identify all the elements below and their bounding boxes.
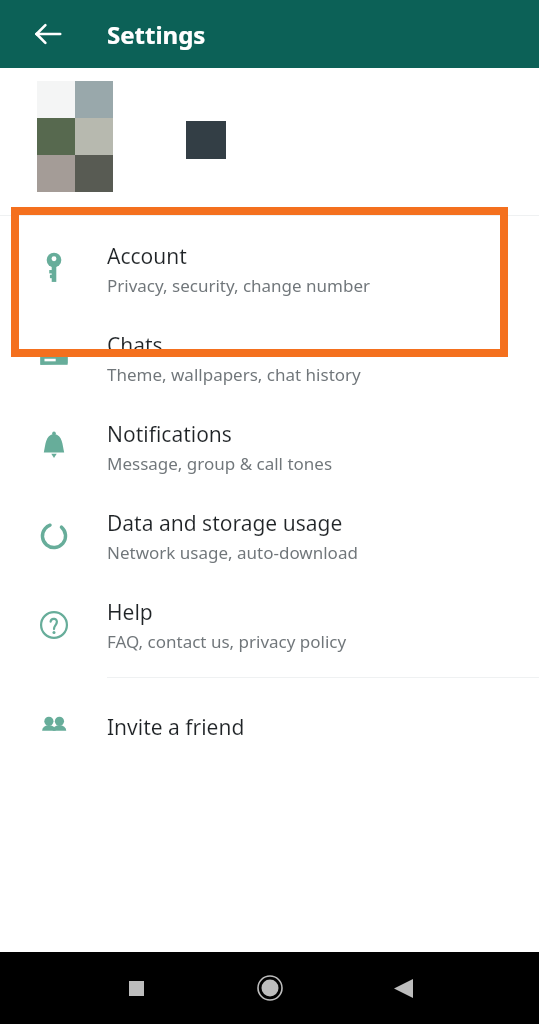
button[interactable]: Data and storage usage (0, 500, 539, 572)
button[interactable]: Chats (0, 322, 539, 394)
button[interactable]: Notifications (0, 411, 539, 483)
staticText: Privacy, security, change number (107, 274, 371, 297)
staticText: Data and storage usage (107, 509, 343, 538)
staticText: Theme, wallpapers, chat history (107, 363, 361, 386)
button[interactable]: Back (20, 6, 76, 62)
staticText: Chats (107, 331, 163, 360)
button[interactable]: Help (0, 589, 539, 661)
button[interactable]: Home (246, 964, 294, 1012)
staticText: Settings (107, 18, 206, 51)
staticText: Message, group & call tones (107, 452, 333, 475)
staticText: Network usage, auto-download (107, 541, 358, 564)
staticText: FAQ, contact us, privacy policy (107, 630, 347, 653)
staticText: Account (107, 242, 187, 271)
button[interactable]: Recents (112, 964, 160, 1012)
button[interactable]: Account (0, 233, 539, 305)
button[interactable]: Back (379, 964, 427, 1012)
button[interactable] (0, 68, 539, 215)
staticText: Invite a friend (107, 713, 245, 742)
staticText: Help (107, 598, 153, 627)
staticText: Notifications (107, 420, 232, 449)
button[interactable]: Invite a friend (0, 699, 539, 755)
